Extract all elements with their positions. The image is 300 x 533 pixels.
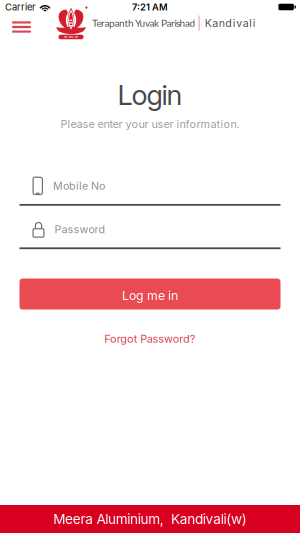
staticText: Carrier	[5, 1, 36, 13]
staticText: 7:21 AM	[132, 1, 168, 13]
staticText: Meera Aluminium, Kandivali(w)	[53, 511, 247, 527]
staticText: Forgot Password?	[104, 332, 196, 345]
staticText: Terapanth Yuvak Parishad	[92, 17, 195, 29]
staticText: Login	[117, 78, 182, 112]
staticText: Password	[54, 223, 105, 236]
staticText: Kandivali	[205, 16, 256, 29]
staticText: Mobile No	[53, 179, 105, 192]
staticText: Please enter your user information.	[60, 117, 239, 131]
staticText: Log me in	[122, 288, 178, 303]
